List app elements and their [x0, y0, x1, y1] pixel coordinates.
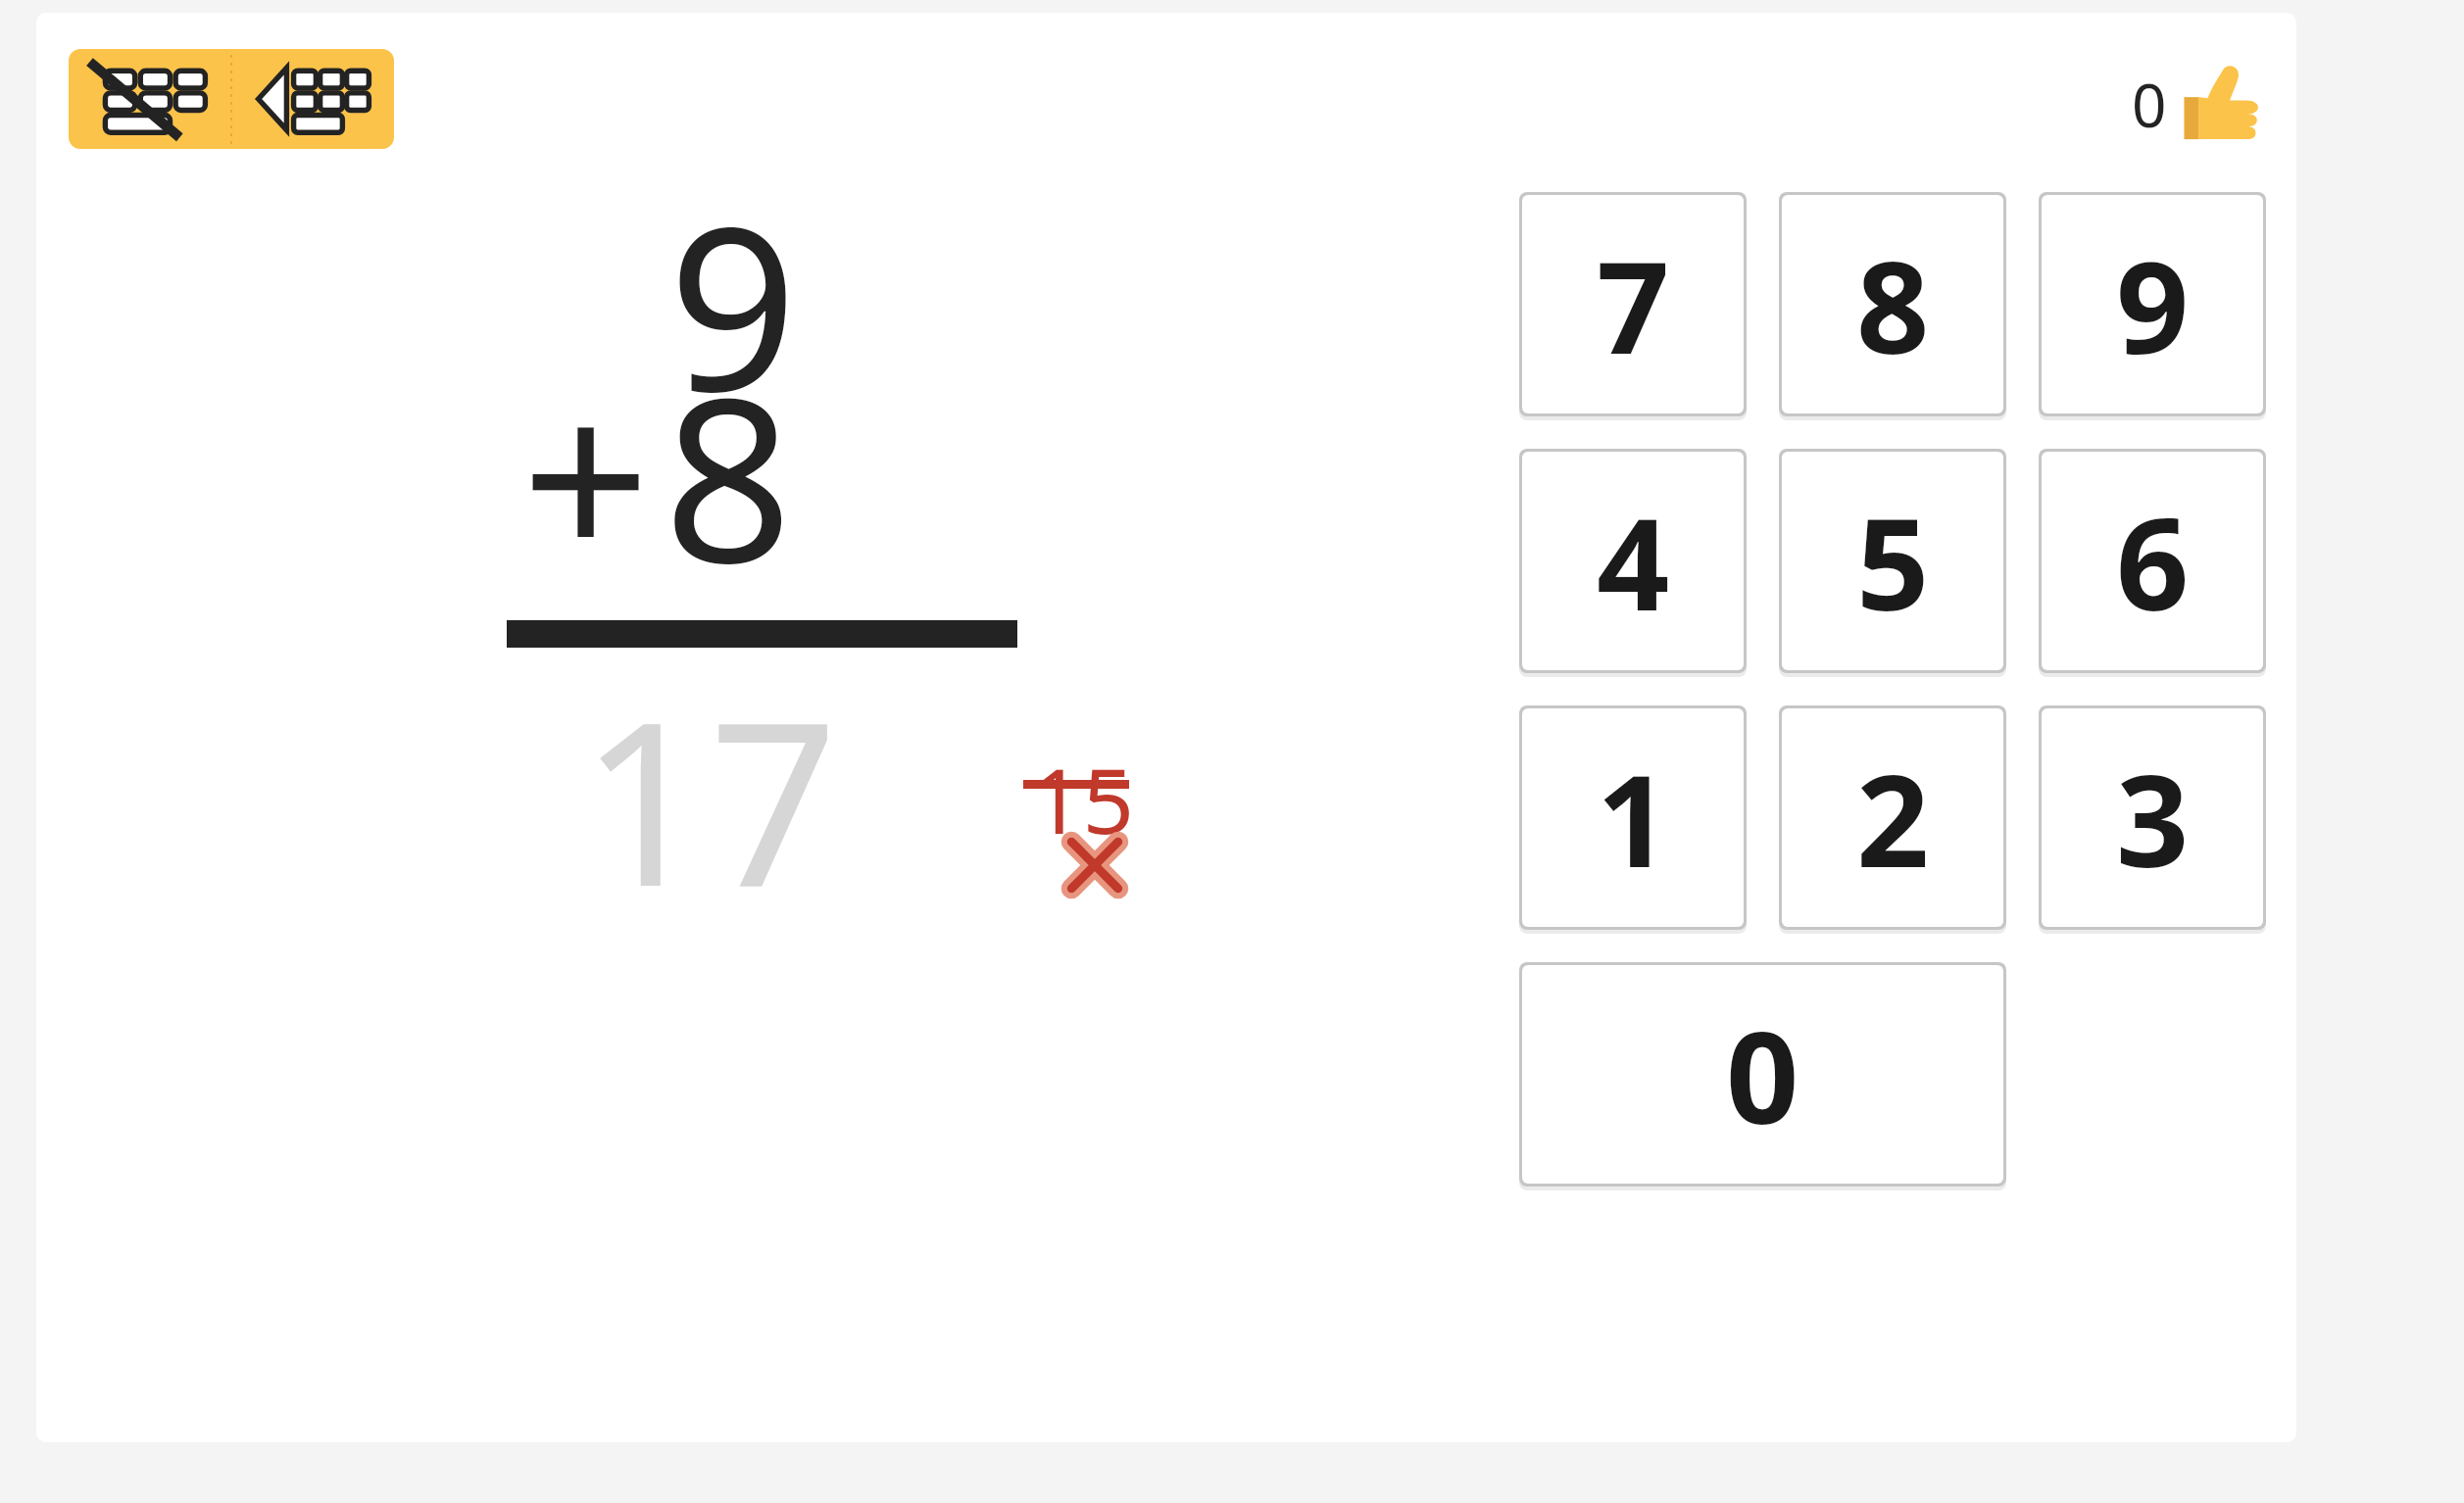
staticText: 15 — [1031, 738, 1135, 860]
button[interactable]: 9 — [2042, 195, 2263, 413]
button[interactable]: 2 — [1782, 708, 2003, 927]
staticText: 3 — [2116, 731, 2190, 904]
button[interactable]: Previous keyboard — [232, 49, 394, 149]
staticText: 0 — [2132, 63, 2167, 145]
button[interactable]: 0 — [2132, 50, 2265, 158]
staticText: 2 — [1856, 731, 1930, 904]
staticText: 9 — [2116, 218, 2190, 391]
button[interactable]: 1 — [1522, 708, 1744, 927]
other: Correct answers — [2181, 62, 2265, 146]
staticText: 17 — [580, 645, 839, 951]
staticText: 7 — [1597, 218, 1670, 391]
staticText: 4 — [1597, 474, 1670, 648]
button[interactable]: Hide keyboard — [69, 49, 231, 149]
button[interactable]: 8 — [1782, 195, 2003, 413]
button[interactable]: 7 — [1522, 195, 1744, 413]
button[interactable]: 3 — [2042, 708, 2263, 927]
staticText: 5 — [1856, 474, 1930, 648]
button[interactable]: 6 — [2042, 452, 2263, 670]
staticText: + — [521, 321, 651, 628]
staticText: 1 — [1597, 731, 1670, 904]
staticText: 6 — [2116, 474, 2190, 648]
button[interactable]: 0 — [1522, 965, 2003, 1184]
button[interactable]: 5 — [1782, 452, 2003, 670]
staticText: 9 — [668, 150, 798, 457]
other: Incorrect — [1060, 831, 1129, 899]
staticText: 8 — [1856, 218, 1930, 391]
staticText: 8 — [664, 321, 793, 628]
staticText: 0 — [1726, 988, 1799, 1161]
button[interactable]: 4 — [1522, 452, 1744, 670]
